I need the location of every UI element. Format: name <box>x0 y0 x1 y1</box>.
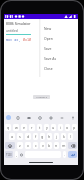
button[interactable]: . <box>63 151 66 158</box>
staticText: d <box>27 134 30 139</box>
button[interactable]: Emoji <box>20 151 23 158</box>
staticText: x <box>27 143 29 148</box>
button[interactable]: t <box>37 124 42 131</box>
staticText: i <box>60 125 61 130</box>
button[interactable]: untitled <box>6 29 31 35</box>
staticText: ASSEMBLE <box>36 96 47 99</box>
button[interactable]: New <box>41 23 78 33</box>
staticText: e <box>23 125 26 130</box>
button[interactable]: Shift <box>5 142 15 149</box>
staticText: o <box>66 125 69 130</box>
button[interactable]: , <box>15 151 18 158</box>
button[interactable]: m <box>61 142 66 149</box>
staticText: 0x10 <box>23 37 32 42</box>
button[interactable]: Close <box>41 63 78 73</box>
button[interactable]: Save <box>41 43 78 53</box>
staticText: p <box>73 125 76 130</box>
button[interactable]: p <box>72 124 77 131</box>
staticText: a <box>11 134 14 139</box>
staticText: untitled <box>6 29 18 33</box>
button[interactable]: a <box>9 133 15 140</box>
button[interactable]: z <box>17 142 23 149</box>
staticText: Save As <box>44 56 57 61</box>
button[interactable]: f <box>33 133 38 140</box>
staticText: z <box>19 143 21 148</box>
staticText: . <box>64 152 65 157</box>
button[interactable]: d <box>25 133 31 140</box>
button[interactable]: Voice input <box>70 115 76 121</box>
staticText: Open <box>44 36 53 41</box>
staticText: g <box>41 134 44 139</box>
button[interactable]: GIF <box>26 115 32 121</box>
staticText: w <box>15 125 18 130</box>
button[interactable]: h <box>47 133 52 140</box>
button[interactable]: q <box>5 124 11 131</box>
button[interactable]: g <box>40 133 45 140</box>
staticText: , <box>16 152 17 157</box>
staticText: b <box>48 143 51 148</box>
button[interactable]: w <box>13 124 19 131</box>
staticText: u <box>52 125 55 130</box>
button[interactable]: c <box>33 142 38 149</box>
button[interactable]: ASSEMBLE <box>33 95 50 99</box>
button[interactable]: Backspace <box>68 142 77 149</box>
staticText: Save <box>44 46 52 51</box>
staticText: n <box>55 143 58 148</box>
button[interactable]: Theme <box>37 115 43 121</box>
staticText: l <box>70 134 71 139</box>
button[interactable]: l <box>68 133 73 140</box>
button[interactable]: Enter <box>68 151 77 158</box>
button[interactable]: u <box>51 124 56 131</box>
staticText: ?123 <box>6 153 12 157</box>
staticText: New <box>44 26 52 31</box>
button[interactable]: s <box>17 133 23 140</box>
staticText: mov ax, <box>6 37 23 42</box>
staticText: m <box>62 143 66 148</box>
button[interactable]: x <box>25 142 31 149</box>
staticText: 8086 Simulator <box>6 21 31 26</box>
staticText: r <box>31 125 33 130</box>
staticText: c <box>35 143 37 148</box>
button[interactable]: o <box>65 124 70 131</box>
staticText: Close <box>44 66 53 71</box>
button[interactable]: Save As <box>41 53 78 63</box>
button[interactable]: Settings <box>48 115 54 121</box>
button[interactable]: y <box>44 124 49 131</box>
button[interactable]: Open <box>41 33 78 43</box>
button[interactable]: Clipboard <box>15 115 21 121</box>
button[interactable]: Google <box>6 115 11 120</box>
button[interactable]: i <box>58 124 63 131</box>
button[interactable]: b <box>47 142 52 149</box>
button[interactable]: j <box>54 133 59 140</box>
staticText: s <box>19 134 21 139</box>
button[interactable]: k <box>61 133 66 140</box>
button[interactable]: v <box>40 142 45 149</box>
staticText: q <box>7 125 10 130</box>
button[interactable]: e <box>21 124 27 131</box>
staticText: t <box>39 125 41 130</box>
staticText: f <box>35 134 37 139</box>
staticText: j <box>56 134 57 139</box>
staticText: h <box>48 134 51 139</box>
staticText: k <box>63 134 65 139</box>
button[interactable]: Symbols <box>5 151 13 158</box>
staticText: y <box>46 125 48 130</box>
staticText: v <box>42 143 44 148</box>
button[interactable]: r <box>29 124 35 131</box>
button[interactable]: More <box>59 115 65 121</box>
button[interactable]: n <box>54 142 59 149</box>
